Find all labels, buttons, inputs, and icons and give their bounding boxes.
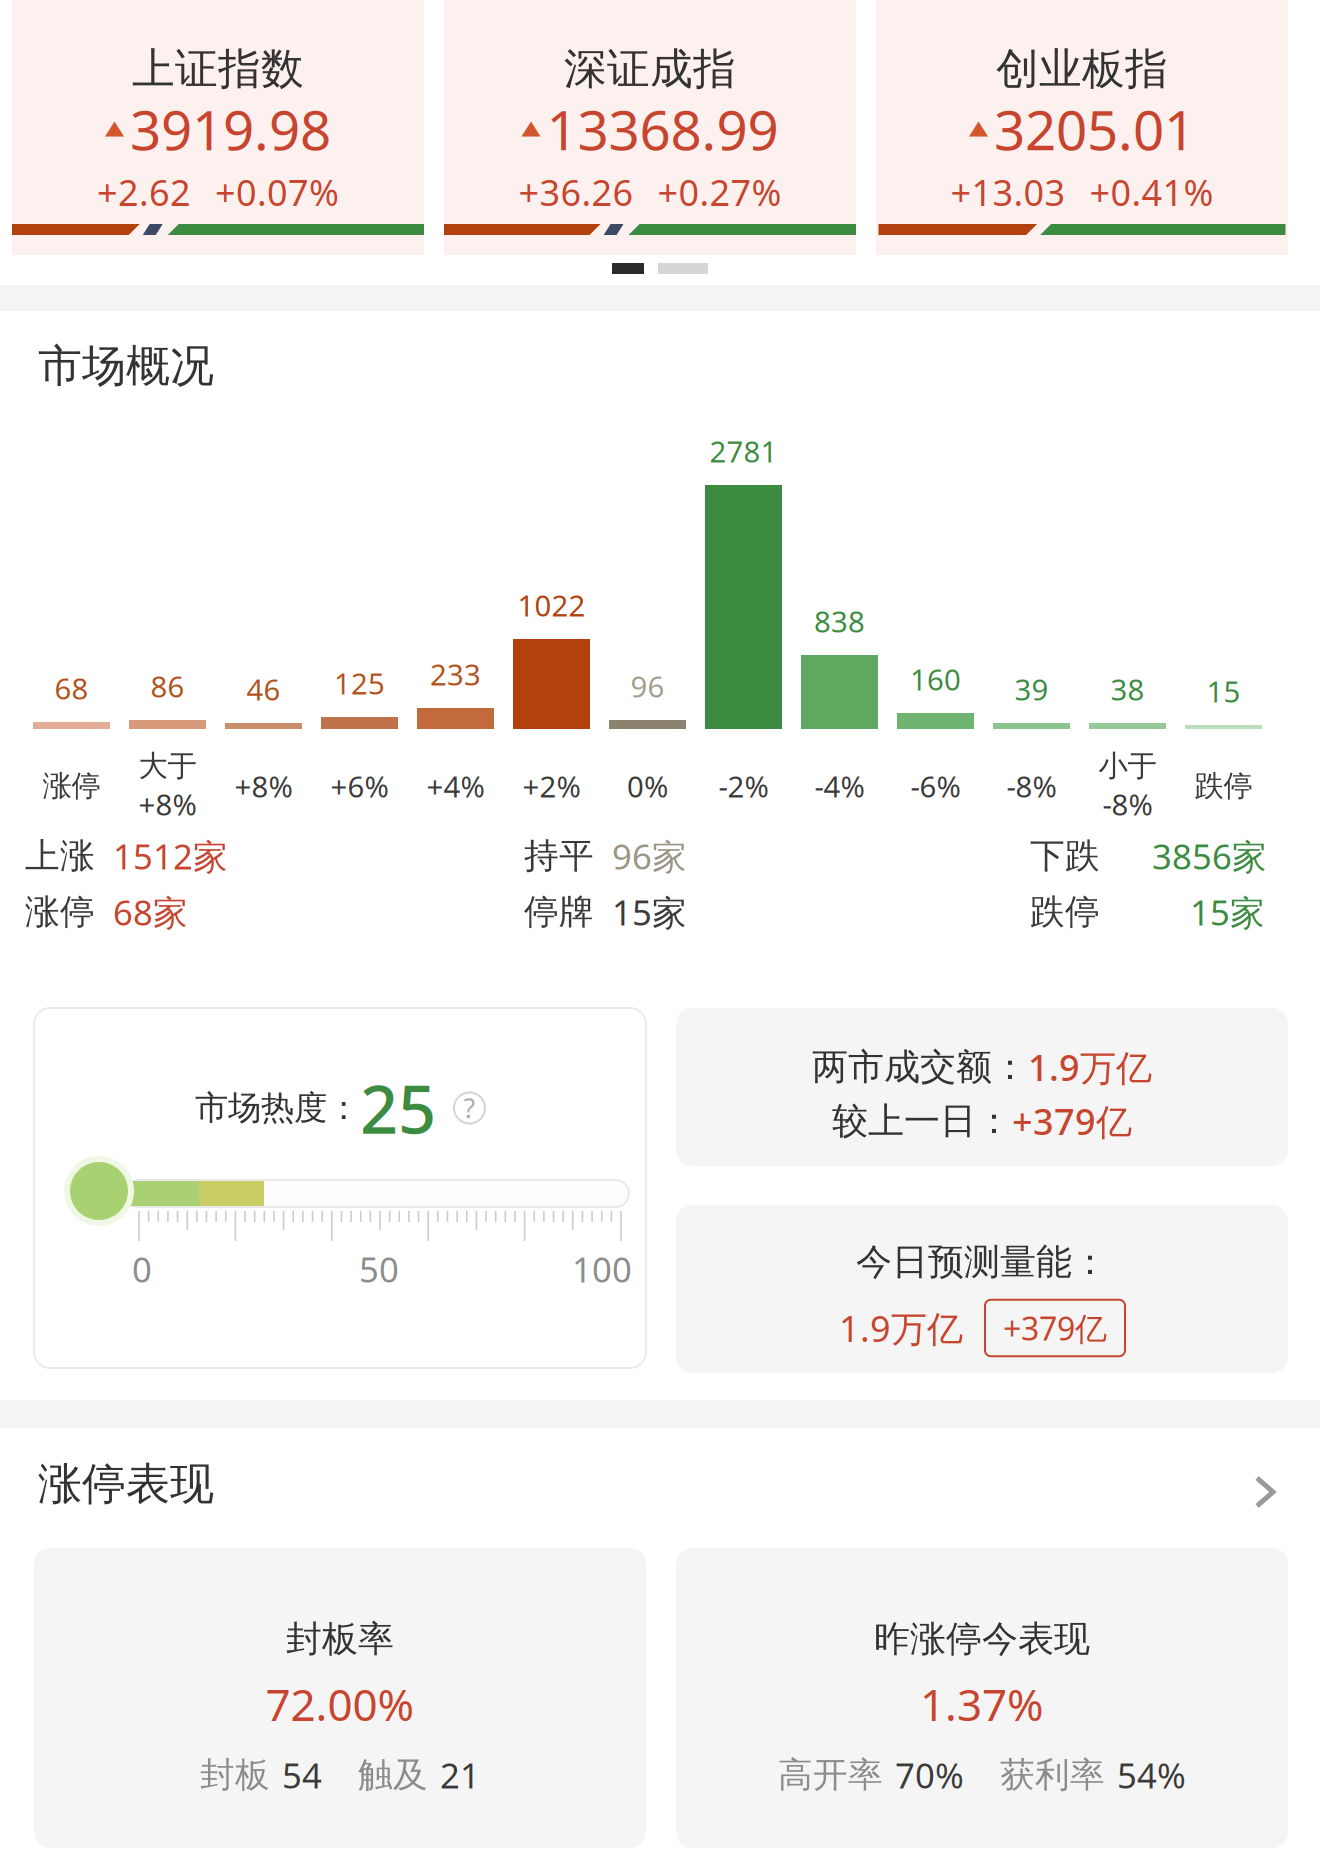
staticText: 54% (1117, 1752, 1186, 1798)
staticText: 封板率 (286, 1617, 394, 1661)
staticText: 1022 (517, 585, 585, 624)
staticText: 68 (54, 668, 88, 707)
staticText: 50 (359, 1246, 399, 1292)
staticText: 86 (150, 666, 184, 705)
staticText: 昨涨停今表现 (874, 1617, 1090, 1661)
staticText: 获利率 (1000, 1754, 1105, 1796)
staticText: +2.62 (97, 168, 191, 216)
staticText: 市场概况 (38, 339, 214, 393)
staticText: 1.9万亿 (839, 1304, 963, 1352)
staticText: 96 (630, 666, 664, 705)
staticText: 2781 (709, 431, 777, 470)
staticText: 上涨 (25, 835, 95, 877)
staticText: 100 (572, 1246, 632, 1292)
staticText: -8% (1102, 784, 1152, 823)
staticText: 1.37% (920, 1675, 1044, 1733)
staticText: +0.27% (657, 168, 781, 216)
staticText: 233 (430, 654, 481, 693)
staticText: 15 (1206, 671, 1240, 710)
staticText: 838 (814, 601, 865, 640)
staticText: 38 (1110, 669, 1144, 708)
staticText: +0.07% (215, 168, 339, 216)
button[interactable]: 深证成指 (444, 0, 856, 255)
staticText: +8% (234, 766, 292, 805)
staticText: 触及 (358, 1754, 428, 1796)
staticText: +6% (330, 766, 388, 805)
staticText: 停牌 (524, 891, 594, 933)
staticText: 两市成交额： (812, 1045, 1028, 1089)
staticText: -6% (910, 766, 960, 805)
staticText: +36.26 (518, 168, 633, 216)
staticText: 125 (334, 663, 385, 702)
staticText: 70% (895, 1752, 964, 1798)
staticText: 160 (910, 659, 961, 698)
staticText: 3205.01 (994, 93, 1195, 165)
staticText: 上证指数 (132, 43, 304, 95)
staticText: 深证成指 (564, 43, 736, 95)
button[interactable]: 创业板指 (876, 0, 1288, 255)
staticText: 96家 (612, 833, 687, 879)
staticText: 跌停 (1030, 891, 1100, 933)
staticText: 15家 (612, 889, 687, 935)
staticText: -8% (1006, 766, 1056, 805)
staticText: +4% (426, 766, 484, 805)
staticText: 创业板指 (996, 43, 1168, 95)
button[interactable]: 封板率 (34, 1548, 646, 1848)
staticText: 46 (246, 669, 280, 708)
staticText: 21 (440, 1752, 480, 1798)
staticText: 小于 (1098, 748, 1156, 784)
staticText: 0% (627, 766, 668, 805)
staticText: -2% (718, 766, 768, 805)
staticText: +379亿 (1003, 1307, 1107, 1349)
staticText: 大于 (138, 748, 196, 784)
staticText: 1.9万亿 (1028, 1043, 1152, 1091)
button[interactable]: 涨停表现 (38, 1457, 1274, 1511)
staticText: 3919.98 (130, 93, 331, 165)
button[interactable]: 昨涨停今表现 (676, 1548, 1288, 1848)
staticText: 今日预测量能： (856, 1240, 1108, 1284)
staticText: ? (463, 1090, 475, 1126)
staticText: 1512家 (113, 833, 228, 879)
staticText: -4% (814, 766, 864, 805)
button[interactable]: 市场热度说明 (454, 1092, 485, 1123)
staticText: 下跌 (1030, 835, 1100, 877)
staticText: 持平 (524, 835, 594, 877)
staticText: 较上一日： (832, 1099, 1012, 1143)
staticText: +379亿 (1012, 1097, 1132, 1145)
staticText: +13.03 (950, 168, 1065, 216)
staticText: 跌停 (1194, 768, 1252, 804)
staticText: 15家 (1190, 889, 1265, 935)
staticText: 13368.99 (546, 93, 778, 165)
staticText: +2% (522, 766, 580, 805)
staticText: 涨停表现 (38, 1457, 214, 1511)
staticText: 39 (1014, 669, 1048, 708)
staticText: +0.41% (1089, 168, 1213, 216)
staticText: 72.00% (265, 1675, 414, 1733)
staticText: 3856家 (1152, 833, 1267, 879)
staticText: 市场热度： (195, 1087, 360, 1128)
button[interactable]: 上证指数 (12, 0, 424, 255)
staticText: 68家 (113, 889, 188, 935)
staticText: 54 (282, 1752, 322, 1798)
staticText: 25 (360, 1064, 436, 1152)
staticText: 0 (132, 1246, 152, 1292)
staticText: 涨停 (25, 891, 95, 933)
staticText: +8% (138, 784, 196, 823)
staticText: 封板 (200, 1754, 270, 1796)
staticText: 高开率 (778, 1754, 883, 1796)
staticText: 涨停 (42, 768, 100, 804)
